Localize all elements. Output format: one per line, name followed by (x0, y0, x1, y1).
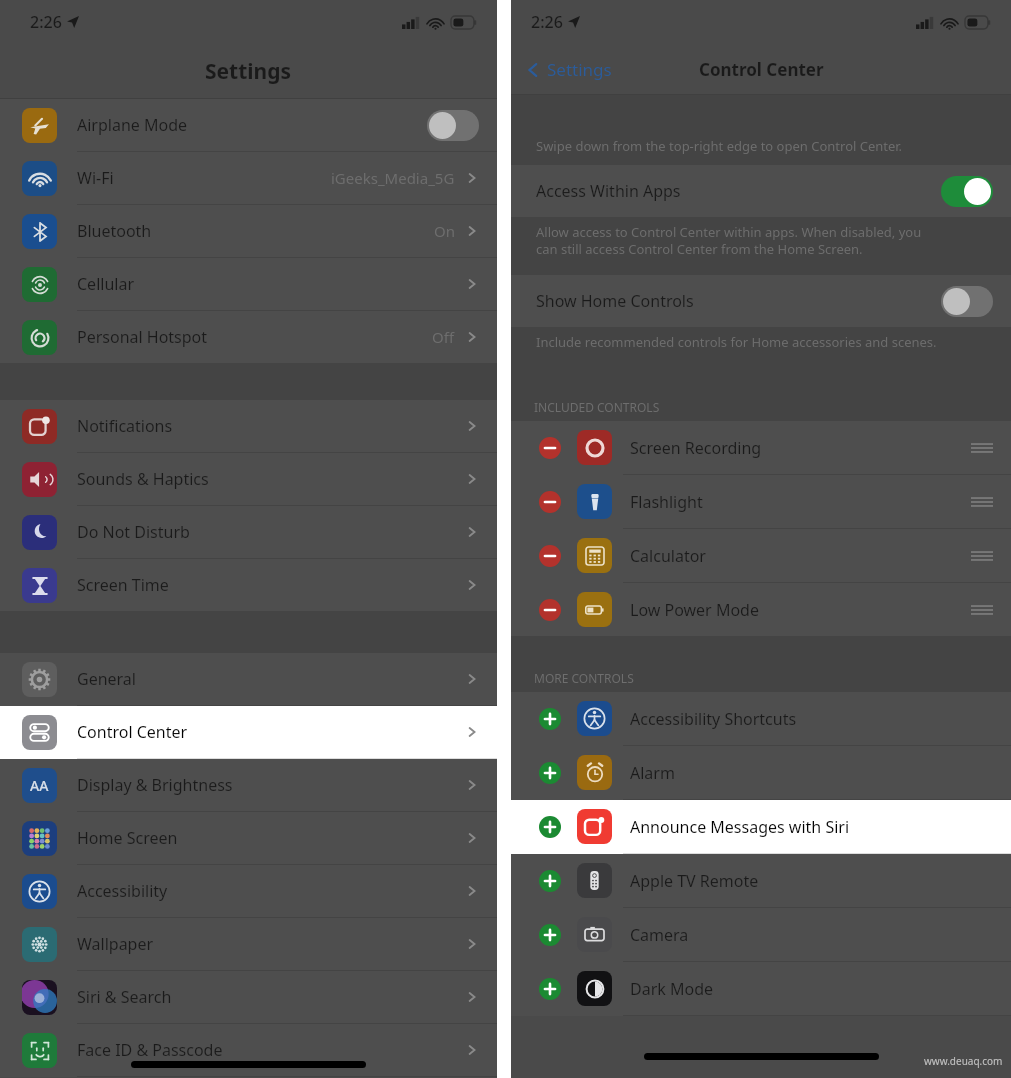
button[interactable]: Toggle (427, 110, 479, 141)
staticText: Apple TV Remote (630, 870, 993, 892)
staticText: Bluetooth (77, 220, 434, 242)
button[interactable]: Toggle (941, 286, 993, 317)
button[interactable]: Remove Flashlight (511, 475, 1011, 529)
staticText: Control Center (77, 721, 465, 743)
staticText: Face ID & Passcode (77, 1039, 465, 1061)
button[interactable]: AA (0, 759, 497, 812)
staticText: Camera (630, 924, 993, 946)
staticText: Swipe down from the top-right edge to op… (536, 137, 903, 155)
other: Add Camera (539, 924, 561, 946)
other: Remove Calculator (539, 545, 561, 567)
staticText: AA (30, 776, 49, 795)
staticText: Display & Brightness (77, 774, 465, 796)
staticText: iGeeks_Media_5G (331, 168, 455, 188)
button[interactable]: Sounds & Haptics (0, 453, 497, 506)
staticText: Announce Messages with Siri (630, 816, 993, 838)
button[interactable]: Add Camera (511, 908, 1011, 962)
staticText: Accessibility (77, 880, 465, 902)
staticText: Settings (205, 57, 292, 86)
staticText: Low Power Mode (630, 599, 971, 621)
staticText: www.deuaq.com (924, 1054, 1003, 1068)
staticText: Off (432, 327, 455, 347)
button[interactable]: Personal Hotspot (0, 311, 497, 363)
other: Reorder (971, 599, 993, 621)
button[interactable]: Airplane Mode (0, 99, 497, 152)
staticText: INCLUDED CONTROLS (534, 399, 660, 415)
button[interactable]: Cellular (0, 258, 497, 311)
button[interactable]: Bluetooth (0, 205, 497, 258)
button[interactable]: Control Center (0, 706, 497, 759)
button[interactable]: Accessibility (0, 865, 497, 918)
staticText: Dark Mode (630, 978, 993, 1000)
button[interactable]: Do Not Disturb (0, 506, 497, 559)
button[interactable]: Remove Low Power Mode (511, 583, 1011, 636)
button[interactable]: Remove Screen Recording (511, 421, 1011, 475)
staticText: MORE CONTROLS (534, 670, 634, 686)
staticText: Alarm (630, 762, 993, 784)
other: Add Apple TV Remote (539, 870, 561, 892)
staticText: Siri & Search (77, 986, 465, 1008)
button[interactable]: Add Announce Messages with Siri (511, 800, 1011, 854)
other: Remove Screen Recording (539, 437, 561, 459)
other: Add Announce Messages with Siri (539, 816, 561, 838)
staticText: Airplane Mode (77, 114, 427, 136)
staticText: 2:26 (30, 11, 62, 33)
button[interactable]: Add Accessibility Shortcuts (511, 692, 1011, 746)
staticText: Show Home Controls (536, 290, 941, 312)
staticText: Wi-Fi (77, 167, 331, 189)
button[interactable]: Wallpaper (0, 918, 497, 971)
button[interactable]: Toggle (941, 176, 993, 207)
staticText: 2:26 (531, 11, 563, 33)
staticText: Flashlight (630, 491, 971, 513)
button[interactable]: Remove Calculator (511, 529, 1011, 583)
button[interactable]: Access Within Apps (511, 165, 1011, 217)
staticText: Do Not Disturb (77, 521, 465, 543)
staticText: General (77, 668, 465, 690)
other: Reorder (971, 545, 993, 567)
button[interactable]: Face ID & Passcode (0, 1024, 497, 1077)
staticText: Include recommended controls for Home ac… (536, 333, 937, 351)
staticText: Control Center (699, 58, 824, 81)
staticText: Sounds & Haptics (77, 468, 465, 490)
staticText: Screen Recording (630, 437, 971, 459)
button[interactable]: Show Home Controls (511, 275, 1011, 327)
button[interactable]: Siri & Search (0, 971, 497, 1024)
other: Add Accessibility Shortcuts (539, 708, 561, 730)
staticText: On (434, 221, 455, 241)
button[interactable]: Notifications (0, 400, 497, 453)
button[interactable]: Home Screen (0, 812, 497, 865)
other: Reorder (971, 437, 993, 459)
button[interactable]: Add Apple TV Remote (511, 854, 1011, 908)
staticText: Cellular (77, 273, 465, 295)
other: Remove Flashlight (539, 491, 561, 513)
staticText: Calculator (630, 545, 971, 567)
button[interactable]: Add Dark Mode (511, 962, 1011, 1016)
button[interactable]: General (0, 653, 497, 706)
staticText: Notifications (77, 415, 465, 437)
staticText: Settings (547, 58, 612, 81)
staticText: Access Within Apps (536, 180, 941, 202)
staticText: Allow access to Control Center within ap… (536, 223, 922, 258)
staticText: Personal Hotspot (77, 326, 432, 348)
other: Reorder (971, 491, 993, 513)
other: Remove Low Power Mode (539, 599, 561, 621)
staticText: Screen Time (77, 574, 465, 596)
other: Add Alarm (539, 762, 561, 784)
button[interactable]: Screen Time (0, 559, 497, 611)
other: Add Dark Mode (539, 978, 561, 1000)
button[interactable]: Add Alarm (511, 746, 1011, 800)
staticText: Wallpaper (77, 933, 465, 955)
staticText: Accessibility Shortcuts (630, 708, 993, 730)
button[interactable]: Wi-Fi (0, 152, 497, 205)
button[interactable]: Settings (525, 58, 612, 81)
staticText: Home Screen (77, 827, 465, 849)
